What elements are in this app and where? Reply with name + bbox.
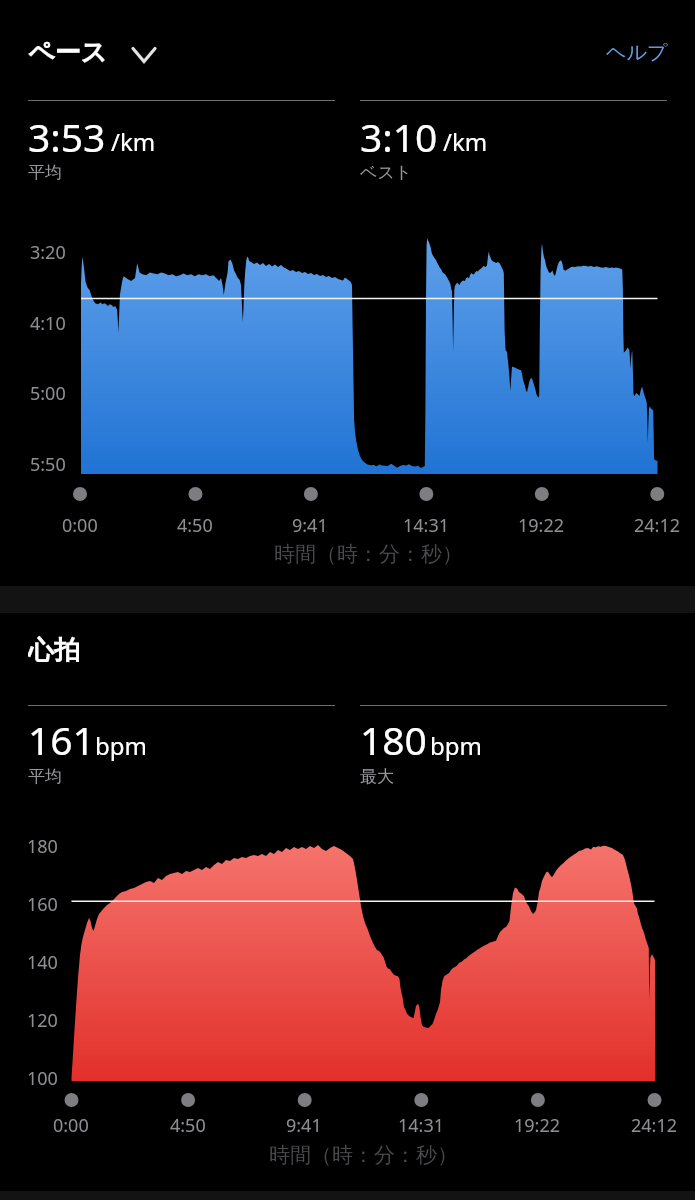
button[interactable]: ペース [28,36,168,68]
staticText: 24:12 [631,1113,678,1138]
staticText: 0:00 [53,1113,89,1138]
staticText: 14:31 [398,1113,445,1138]
staticText: 0:00 [62,513,98,538]
staticText: 時間（時：分：秒） [269,1142,458,1168]
staticText: 4:50 [170,1113,206,1138]
staticText: 140 [27,950,58,975]
staticText: 161 [28,713,95,761]
staticText: 5:00 [30,381,66,406]
staticText: 24:12 [634,513,681,538]
staticText: 160 [27,892,58,917]
staticText: 120 [27,1008,58,1033]
staticText: 平均 [28,162,62,183]
staticText: /km [111,125,156,158]
staticText: 180 [27,834,58,859]
staticText: 4:50 [177,513,213,538]
staticText: 最大 [360,766,394,787]
staticText: bpm [95,729,147,762]
staticText: 19:22 [514,1113,561,1138]
staticText: 3:53 [28,110,106,158]
staticText: 5:50 [30,452,66,477]
staticText: 19:22 [518,513,565,538]
staticText: /km [443,125,488,158]
staticText: ヘルプ [606,40,668,65]
staticText: 180 [360,713,427,761]
staticText: 100 [27,1066,58,1091]
staticText: 9:41 [292,513,328,538]
staticText: 時間（時：分：秒） [274,541,463,567]
staticText: 3:10 [360,110,438,158]
staticText: 平均 [28,766,62,787]
staticText: ペース [28,36,108,68]
staticText: 9:41 [286,1113,322,1138]
button[interactable]: ヘルプ [591,38,668,66]
staticText: ベスト [360,162,413,183]
staticText: 3:20 [30,240,66,265]
staticText: 心拍 [28,634,80,666]
staticText: 4:10 [30,311,66,336]
staticText: 14:31 [403,513,450,538]
staticText: bpm [430,729,482,762]
